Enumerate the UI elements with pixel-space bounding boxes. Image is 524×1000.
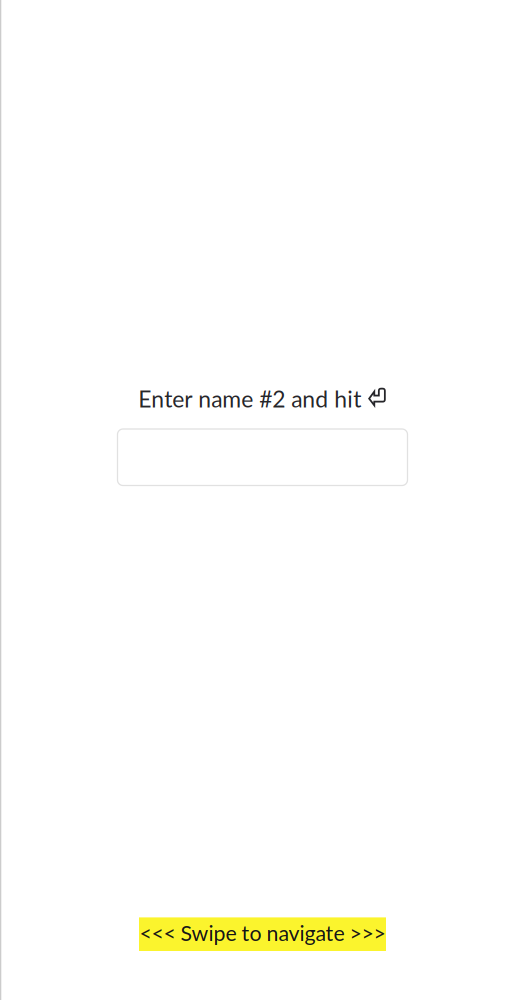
staticText: Enter name #2 and hit	[138, 385, 361, 412]
staticText: <<< Swipe to navigate >>>	[139, 920, 385, 945]
button[interactable]: Name text field	[117, 429, 407, 485]
button[interactable]: <<< Swipe to navigate >>>	[139, 917, 386, 951]
